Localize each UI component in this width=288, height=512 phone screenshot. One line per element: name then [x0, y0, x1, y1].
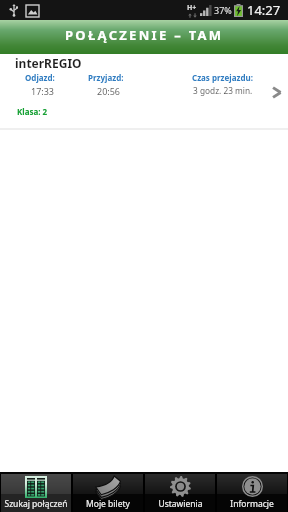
staticText: 3 godz. 23 min. [193, 85, 253, 96]
button[interactable]: Moje bilety [73, 474, 143, 512]
staticText: Czas przejazdu: [192, 72, 253, 83]
staticText: POŁĄCZENIE – TAM [65, 26, 224, 44]
staticText: Klasa: 2 [17, 106, 48, 117]
staticText: 14:27 [247, 1, 281, 19]
button[interactable]: interREGIO [0, 54, 288, 130]
button[interactable]: Ustawienia [145, 474, 215, 512]
staticText: Informacje [230, 498, 274, 510]
staticText: Ustawienia [158, 498, 203, 510]
staticText: Odjazd: [25, 72, 55, 83]
staticText: 17:33 [31, 85, 55, 97]
button[interactable]: Szukaj połączeń [1, 474, 71, 512]
staticText: 20:56 [97, 85, 121, 97]
staticText: Moje bilety [86, 498, 130, 510]
staticText: Przyjazd: [88, 72, 124, 83]
staticText: H+ [187, 3, 197, 13]
button[interactable]: Informacje [217, 474, 287, 512]
staticText: 37% [214, 4, 232, 16]
staticText: Szukaj połączeń [4, 498, 68, 510]
staticText: interREGIO [15, 55, 82, 71]
